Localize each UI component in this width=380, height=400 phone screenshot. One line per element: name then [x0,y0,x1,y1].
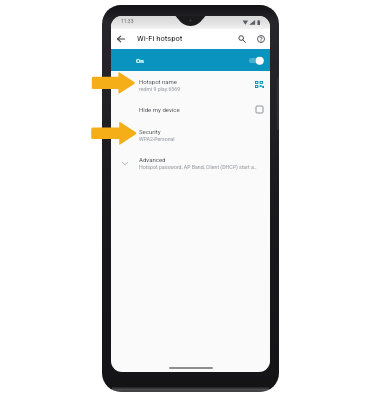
staticText: Advanced [139,156,166,163]
button[interactable]: Help [253,31,269,47]
button[interactable]: Hotspot name [111,71,270,98]
staticText: On [136,57,144,64]
staticText: Wi-Fi hotspot [137,34,183,43]
staticText: WPA2-Personal [139,136,175,142]
button[interactable]: Security [111,121,270,149]
staticText: Security [139,128,161,135]
button[interactable]: Search [234,31,250,47]
staticText: Hotspot name [139,78,178,85]
button[interactable]: Hide my device [111,98,270,121]
staticText: redmi 9 play 6569 [139,86,181,92]
button[interactable]: On [111,49,270,71]
button[interactable]: Back [113,31,129,47]
staticText: 11:33 [121,18,134,24]
staticText: Hotspot password, AP Band, Client (DHCP)… [139,164,257,170]
button[interactable]: Advanced [111,149,270,177]
staticText: Hide my device [139,106,180,113]
